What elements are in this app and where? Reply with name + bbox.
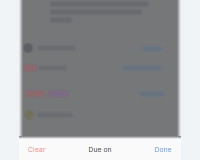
button[interactable]: Clear [19, 139, 55, 160]
staticText: Done [154, 145, 171, 154]
button[interactable]: Due on [80, 139, 120, 160]
button[interactable]: Done [145, 139, 181, 160]
staticText: Clear [28, 145, 46, 154]
staticText: Due on [88, 145, 111, 154]
